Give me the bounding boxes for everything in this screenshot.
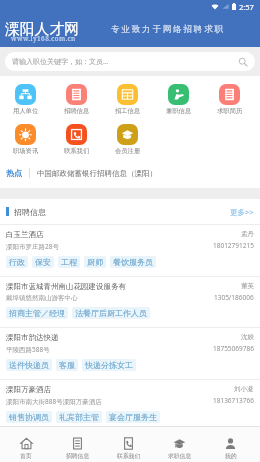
- button[interactable]: 求职简历: [204, 84, 255, 115]
- staticText: 客服: [59, 360, 75, 370]
- staticText: 专业致力于网络招聘求职: [111, 24, 225, 35]
- button[interactable]: 更多>>: [230, 207, 254, 217]
- button[interactable]: 首页: [0, 427, 52, 462]
- staticText: 18136713766: [213, 396, 254, 405]
- staticText: 中国邮政储蓄银行招聘信息（溧阳）: [37, 169, 157, 178]
- other: 搜索: [238, 57, 248, 67]
- staticText: 宴会厅服务生: [109, 412, 157, 422]
- staticText: 沈姣: [241, 333, 254, 341]
- staticText: 快递分拣女工: [85, 360, 133, 370]
- button[interactable]: 会员注册: [102, 124, 153, 155]
- staticText: 求职信息: [168, 452, 192, 459]
- button[interactable]: 招工信息: [102, 84, 153, 115]
- staticText: 招聘信息: [14, 207, 46, 217]
- staticText: 法餐厅后厨工作人员: [75, 308, 147, 318]
- staticText: 戴埠镇悠然南山游客中心: [6, 294, 78, 302]
- staticText: 1305/186006: [214, 293, 254, 302]
- staticText: 溧阳万豪酒店: [6, 385, 51, 394]
- staticText: 18755069786: [213, 344, 254, 353]
- staticText: 联系我们: [117, 452, 141, 459]
- button[interactable]: 联系我们: [51, 124, 102, 155]
- staticText: 我的: [225, 452, 237, 459]
- staticText: www.ly168.com.cn: [11, 34, 76, 43]
- staticText: 溧阳市南大街888号溧阳万豪酒店: [6, 397, 102, 406]
- staticText: 会员注册: [115, 147, 141, 155]
- staticText: 溧阳人才网: [5, 20, 79, 39]
- staticText: 销售协调员: [9, 412, 49, 422]
- button[interactable]: 用人单位: [0, 84, 51, 115]
- staticText: 招商主管／经理: [9, 308, 65, 318]
- staticText: 兼职信息: [166, 107, 192, 115]
- button[interactable]: 溧阳市韵达快递: [0, 327, 260, 379]
- button[interactable]: 请输入职位关键字，如：文员…: [5, 52, 255, 71]
- button[interactable]: 溧阳市蓝城青州南山花园建设服务有: [0, 276, 260, 327]
- staticText: 求职简历: [217, 107, 243, 115]
- staticText: 刘小凝: [234, 385, 254, 393]
- staticText: 送件快递员: [9, 360, 49, 370]
- button[interactable]: 职场资讯: [0, 124, 51, 155]
- button[interactable]: 兼职信息: [153, 84, 204, 115]
- staticText: 2:57: [239, 2, 254, 12]
- staticText: 礼宾部主管: [59, 412, 99, 422]
- button[interactable]: 热点: [0, 158, 260, 188]
- staticText: 白玉兰酒店: [6, 230, 44, 239]
- staticText: 招聘信息: [64, 107, 90, 115]
- staticText: 联系我们: [64, 147, 90, 155]
- staticText: 保安: [35, 257, 51, 267]
- staticText: 职场资讯: [13, 147, 39, 155]
- staticText: 董英: [241, 282, 254, 290]
- button[interactable]: 溧阳万豪酒店: [0, 379, 260, 431]
- button[interactable]: 联系我们: [103, 427, 154, 462]
- staticText: 溧阳市罗庄路28号: [6, 242, 59, 251]
- button[interactable]: 求职信息: [154, 427, 205, 462]
- staticText: 更多>>: [230, 207, 254, 217]
- button[interactable]: 我的: [205, 427, 256, 462]
- staticText: 孟丹: [241, 230, 254, 238]
- button[interactable]: 招聘信息: [52, 427, 103, 462]
- staticText: 招工信息: [115, 107, 141, 115]
- button[interactable]: 白玉兰酒店: [0, 224, 260, 276]
- staticText: 厨师: [87, 257, 103, 267]
- staticText: 招聘信息: [66, 452, 90, 459]
- button[interactable]: 招聘信息: [51, 84, 102, 115]
- staticText: 用人单位: [13, 107, 39, 115]
- staticText: 18012791215: [213, 241, 254, 250]
- staticText: 行政: [9, 257, 25, 267]
- staticText: 平陵西路588号: [6, 345, 50, 354]
- staticText: 溧阳市韵达快递: [6, 333, 59, 342]
- staticText: 首页: [20, 452, 32, 459]
- staticText: 溧阳市蓝城青州南山花园建设服务有: [6, 282, 126, 291]
- staticText: 请输入职位关键字，如：文员…: [12, 57, 109, 67]
- staticText: 工程: [61, 257, 77, 267]
- staticText: 热点: [6, 168, 22, 178]
- staticText: 餐饮服务员: [113, 257, 153, 267]
